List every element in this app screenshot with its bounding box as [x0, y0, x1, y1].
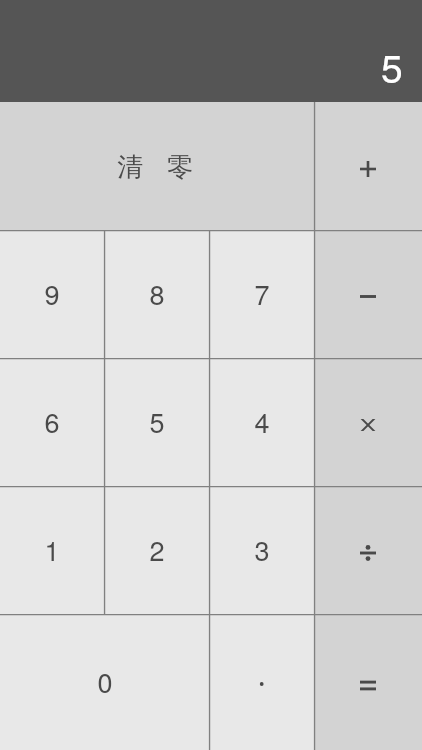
button[interactable]: 6 [0, 358, 104, 486]
button[interactable]: Plus [314, 102, 422, 230]
button[interactable]: Minus [314, 230, 422, 358]
staticText: 1 [44, 530, 60, 569]
button[interactable]: 3 [209, 486, 314, 614]
button[interactable]: 2 [104, 486, 209, 614]
staticText: 2 [149, 530, 165, 569]
staticText: 8 [149, 274, 165, 313]
button[interactable]: Display [0, 0, 422, 102]
button[interactable]: 8 [104, 230, 209, 358]
button[interactable]: 5 [104, 358, 209, 486]
button[interactable]: Decimal point [209, 614, 314, 750]
staticText: 9 [44, 274, 60, 313]
button[interactable]: Divide [314, 486, 422, 614]
button[interactable]: 1 [0, 486, 104, 614]
staticText: 5 [149, 402, 165, 441]
button[interactable]: 7 [209, 230, 314, 358]
staticText: 清 [117, 151, 143, 184]
button[interactable]: Equals [314, 614, 422, 750]
button[interactable]: Clear [0, 102, 314, 230]
staticText: 零 [167, 151, 193, 184]
button[interactable]: 9 [0, 230, 104, 358]
button[interactable]: Zero [0, 614, 209, 750]
staticText: 5 [381, 38, 403, 94]
staticText: 0 [97, 662, 113, 701]
staticText: 7 [254, 274, 270, 313]
button[interactable]: Multiply [314, 358, 422, 486]
button[interactable]: 4 [209, 358, 314, 486]
staticText: 6 [44, 402, 60, 441]
staticText: 4 [254, 402, 270, 441]
staticText: 3 [254, 530, 270, 569]
